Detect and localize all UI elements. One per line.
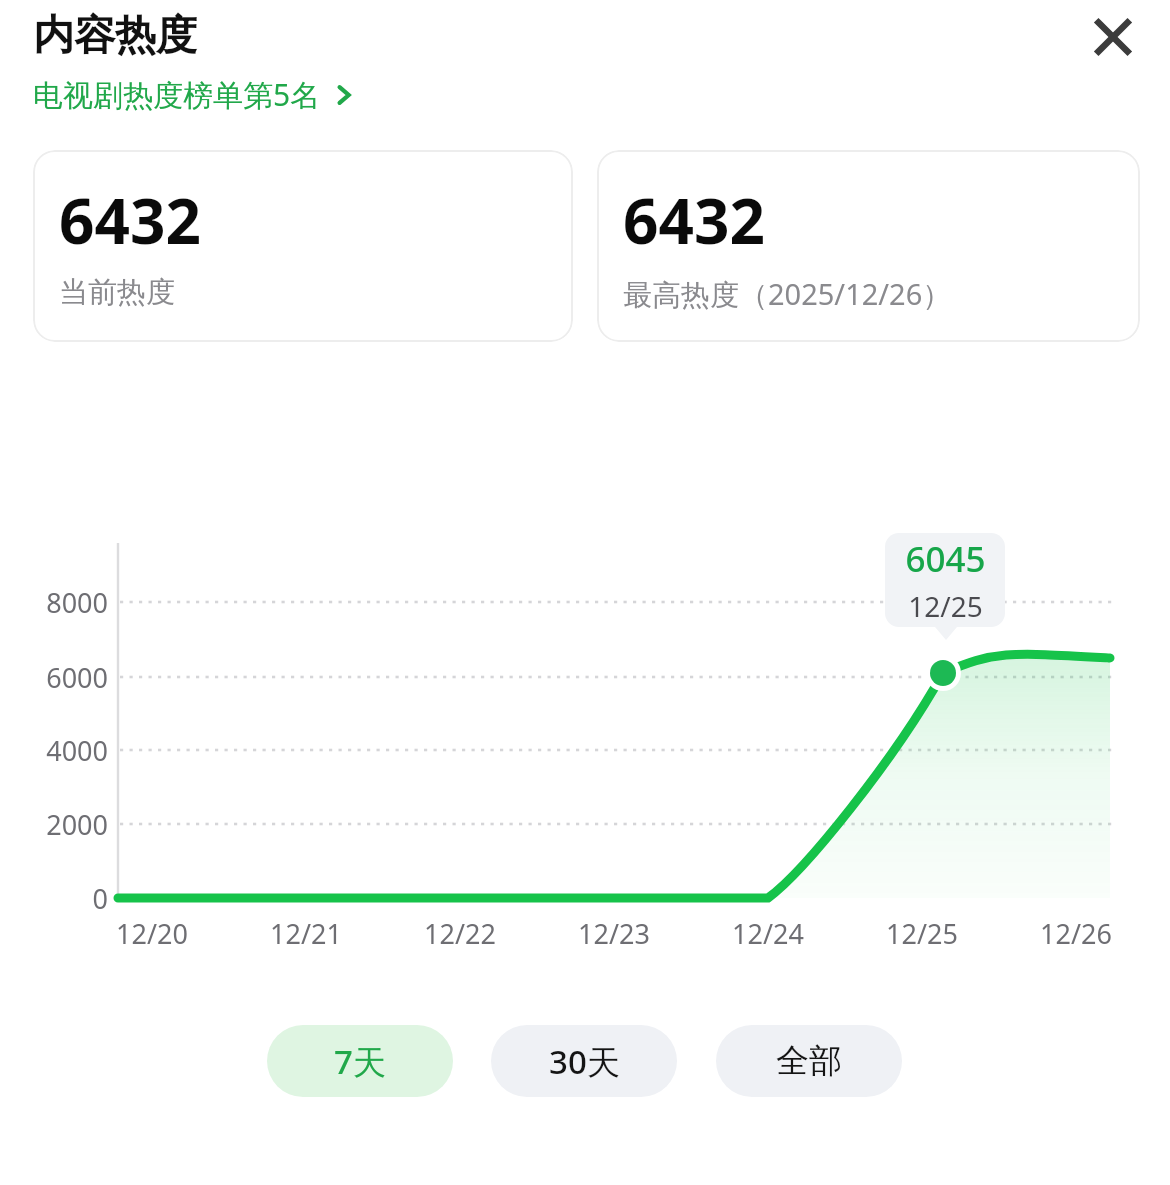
staticText: 12/23 bbox=[578, 915, 650, 952]
staticText: 8000 bbox=[46, 584, 108, 621]
staticText: 6045 bbox=[905, 535, 986, 583]
staticText: 6000 bbox=[46, 659, 108, 696]
staticText: 全部 bbox=[776, 1040, 842, 1082]
staticText: 6432 bbox=[59, 178, 201, 262]
button[interactable]: 30天 bbox=[491, 1025, 677, 1097]
button[interactable]: Close bbox=[1070, 0, 1156, 80]
staticText: 当前热度 bbox=[59, 274, 175, 311]
staticText: 2000 bbox=[46, 806, 108, 843]
staticText: 30天 bbox=[549, 1039, 620, 1084]
button[interactable]: 7天 bbox=[267, 1025, 453, 1097]
staticText: 7天 bbox=[334, 1039, 386, 1084]
staticText: 内容热度 bbox=[33, 10, 197, 62]
button[interactable]: 6432 bbox=[33, 150, 573, 342]
staticText: 6432 bbox=[623, 178, 765, 262]
staticText: 电视剧热度榜单第5名 bbox=[33, 74, 321, 115]
button[interactable]: 电视剧热度榜单第5名 bbox=[33, 74, 357, 115]
staticText: 0 bbox=[92, 880, 108, 917]
staticText: 最高热度（2025/12/26） bbox=[623, 274, 952, 314]
staticText: 4000 bbox=[46, 732, 108, 769]
staticText: 12/22 bbox=[424, 915, 496, 952]
staticText: 12/25 bbox=[908, 587, 983, 625]
staticText: 12/20 bbox=[116, 915, 188, 952]
staticText: 12/26 bbox=[1040, 915, 1112, 952]
button[interactable]: 全部 bbox=[716, 1025, 902, 1097]
staticText: 12/24 bbox=[732, 915, 804, 952]
button[interactable]: 6432 bbox=[597, 150, 1140, 342]
staticText: 12/21 bbox=[270, 915, 342, 952]
staticText: 12/25 bbox=[886, 915, 958, 952]
